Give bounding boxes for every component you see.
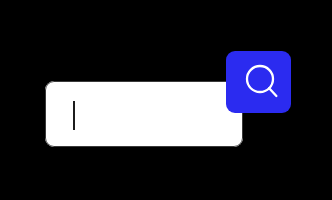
button[interactable] bbox=[45, 81, 243, 147]
button[interactable]: Search bbox=[226, 51, 291, 113]
